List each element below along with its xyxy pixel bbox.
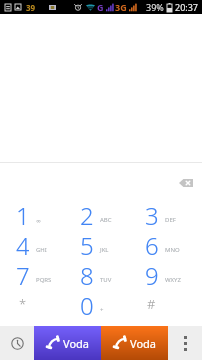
button[interactable]: More options: [168, 326, 202, 360]
staticText: ∞: [36, 217, 41, 224]
staticText: JKL: [100, 246, 109, 254]
staticText: *: [19, 295, 27, 313]
staticText: Voda: [130, 336, 156, 351]
staticText: WXYZ: [165, 276, 181, 284]
button[interactable]: 4: [2, 229, 66, 259]
staticText: PQRS: [36, 276, 52, 284]
button[interactable]: 2: [66, 199, 131, 229]
staticText: MNO: [165, 246, 180, 254]
button[interactable]: 8: [66, 259, 131, 289]
button[interactable]: Call history: [0, 326, 34, 360]
staticText: 5: [80, 229, 93, 259]
staticText: 39%: [146, 1, 164, 13]
button[interactable]: Backspace: [179, 179, 193, 187]
button[interactable]: 5: [66, 229, 131, 259]
staticText: DEF: [165, 216, 176, 224]
button[interactable]: *: [2, 289, 66, 319]
button[interactable]: #: [131, 289, 196, 319]
staticText: 39: [26, 2, 36, 13]
staticText: 1: [16, 199, 29, 229]
button[interactable]: Voda: [34, 326, 101, 360]
staticText: GHI: [36, 246, 47, 254]
staticText: ABC: [100, 216, 112, 224]
staticText: 20:37: [175, 1, 199, 13]
staticText: Voda: [63, 336, 89, 351]
staticText: #: [147, 295, 156, 313]
staticText: 4: [16, 229, 29, 259]
staticText: 8: [80, 259, 93, 289]
staticText: 0: [80, 289, 93, 319]
staticText: 7: [16, 259, 29, 289]
button[interactable]: 0: [66, 289, 131, 319]
staticText: 9: [145, 259, 158, 289]
button[interactable]: 1: [2, 199, 66, 229]
button[interactable]: 6: [131, 229, 196, 259]
staticText: 2: [80, 199, 93, 229]
staticText: 3G: [115, 1, 127, 13]
button[interactable]: Voda: [101, 326, 168, 360]
staticText: 6: [145, 229, 158, 259]
button[interactable]: 3: [131, 199, 196, 229]
staticText: 3: [145, 199, 158, 229]
staticText: TUV: [100, 276, 112, 284]
staticText: G: [97, 1, 104, 13]
button[interactable]: 7: [2, 259, 66, 289]
button[interactable]: 9: [131, 259, 196, 289]
staticText: +: [100, 306, 104, 314]
